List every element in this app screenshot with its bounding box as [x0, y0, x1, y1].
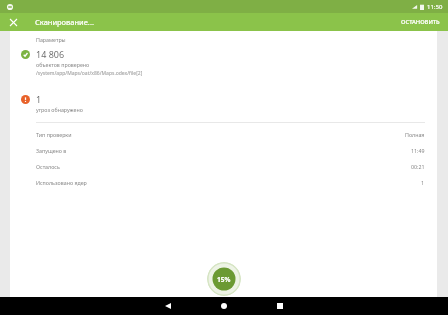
- button[interactable]: 1: [10, 88, 437, 113]
- button[interactable]: Использовано ядер: [10, 174, 437, 190]
- staticText: 00:21: [411, 163, 425, 170]
- staticText: Запущено в: [36, 147, 67, 154]
- staticText: Сканирование...: [35, 17, 94, 27]
- button[interactable]: Close: [6, 15, 20, 29]
- staticText: угроз обнаружено: [36, 106, 83, 113]
- staticText: Тип проверки: [36, 131, 72, 138]
- button[interactable]: Recent apps: [272, 298, 288, 314]
- staticText: 14 806: [36, 48, 65, 60]
- staticText: ОСТАНОВИТЬ: [401, 18, 440, 26]
- staticText: Полная: [405, 131, 425, 138]
- staticText: /system/app/Maps/oat/x86/Maps.odex/file[…: [36, 70, 143, 77]
- button[interactable]: Back: [160, 298, 176, 314]
- staticText: объектов проверено: [36, 61, 90, 68]
- button[interactable]: Home: [216, 298, 232, 314]
- button[interactable]: Scan progress 15 percent: [207, 262, 241, 296]
- button[interactable]: Запущено в: [10, 142, 437, 158]
- staticText: 15%: [217, 275, 231, 284]
- button[interactable]: 14 806: [10, 43, 437, 77]
- staticText: 11:49: [411, 147, 425, 154]
- staticText: Осталось: [36, 163, 60, 170]
- staticText: 1: [421, 179, 425, 186]
- staticText: Использовано ядер: [36, 179, 87, 186]
- staticText: 11:50: [427, 3, 443, 11]
- staticText: 1: [36, 93, 42, 105]
- button[interactable]: ОСТАНОВИТЬ: [393, 15, 448, 29]
- button[interactable]: Тип проверки: [10, 126, 437, 142]
- button[interactable]: Осталось: [10, 158, 437, 174]
- staticText: Параметры: [36, 36, 66, 43]
